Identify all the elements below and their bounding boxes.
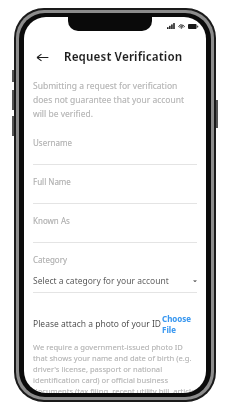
staticText: Full Name [33, 176, 71, 187]
staticText: Username [33, 137, 72, 148]
button[interactable]: Known As [24, 215, 206, 254]
button[interactable]: Choose File [162, 313, 197, 335]
button[interactable]: Category [24, 254, 206, 293]
staticText: Select a category for your account [33, 275, 169, 287]
staticText: Submitting a request for verification do… [33, 80, 197, 119]
staticText: Category [33, 254, 68, 265]
button[interactable]: Username [24, 137, 206, 176]
staticText: Known As [33, 215, 70, 226]
staticText: Request Verification [64, 49, 183, 65]
staticText: We require a government-issued photo ID … [33, 342, 197, 393]
button[interactable]: Full Name [24, 176, 206, 215]
staticText: Please attach a photo of your ID [33, 318, 162, 330]
staticText: Choose File [162, 313, 197, 335]
button[interactable]: Back [32, 47, 52, 67]
